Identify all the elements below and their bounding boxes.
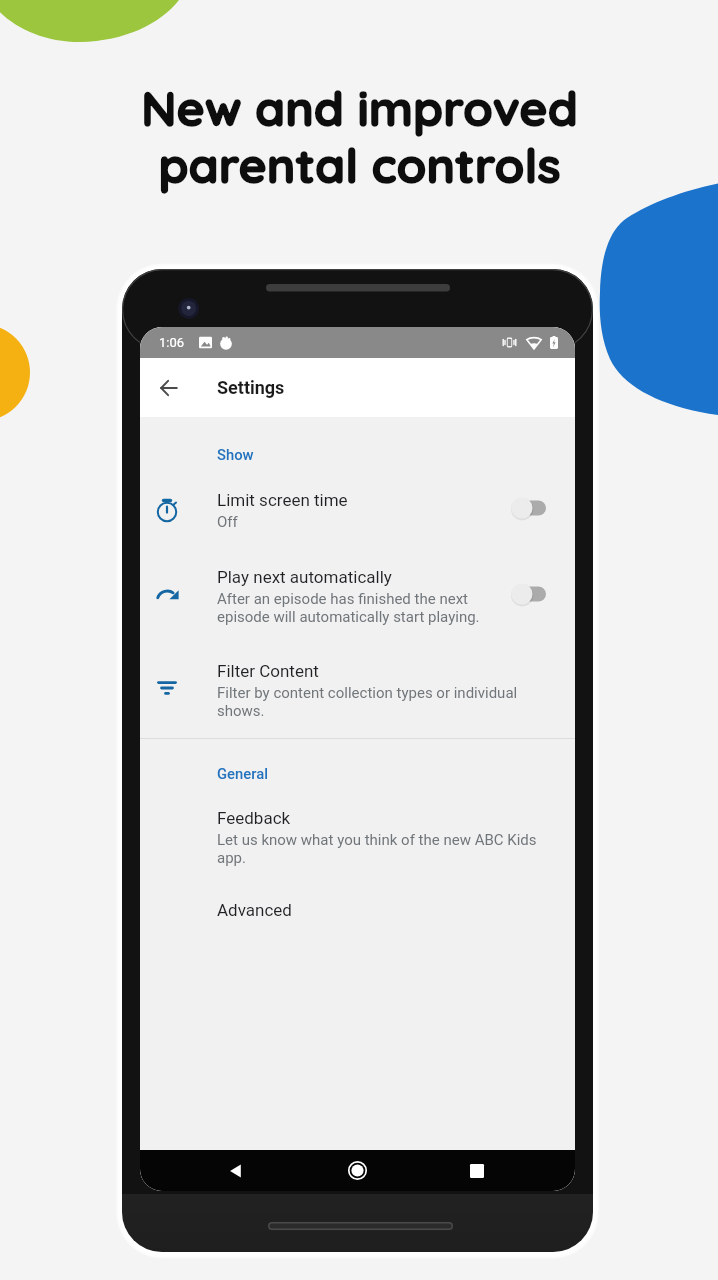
button[interactable]: Back (212, 1150, 260, 1191)
staticText: Off (217, 513, 238, 531)
staticText: Limit screen time (217, 490, 348, 510)
button[interactable]: Advanced (140, 873, 575, 924)
staticText: New and improved parental controls (141, 78, 578, 195)
staticText: After an episode has finished the next e… (217, 590, 480, 626)
button[interactable]: Play next automatically (140, 537, 575, 632)
button[interactable]: Navigate back (140, 358, 198, 417)
button[interactable]: Filter Content (140, 632, 575, 726)
button[interactable]: Toggle off (512, 494, 556, 522)
button[interactable]: Toggle off (512, 580, 556, 608)
staticText: Let us know what you think of the new AB… (217, 831, 537, 867)
staticText: 1:06 (159, 335, 185, 350)
staticText: Settings (217, 377, 285, 398)
staticText: Advanced (217, 900, 292, 920)
staticText: Show (217, 446, 254, 463)
staticText: Play next automatically (217, 567, 392, 587)
button[interactable]: Recent apps (453, 1150, 501, 1191)
staticText: General (217, 765, 268, 782)
button[interactable]: Feedback (140, 784, 575, 873)
button[interactable]: Limit screen time (140, 465, 575, 537)
button[interactable]: Home (333, 1150, 381, 1191)
staticText: Filter Content (217, 661, 319, 681)
staticText: Filter by content collection types or in… (217, 684, 518, 720)
staticText: Feedback (217, 808, 291, 828)
